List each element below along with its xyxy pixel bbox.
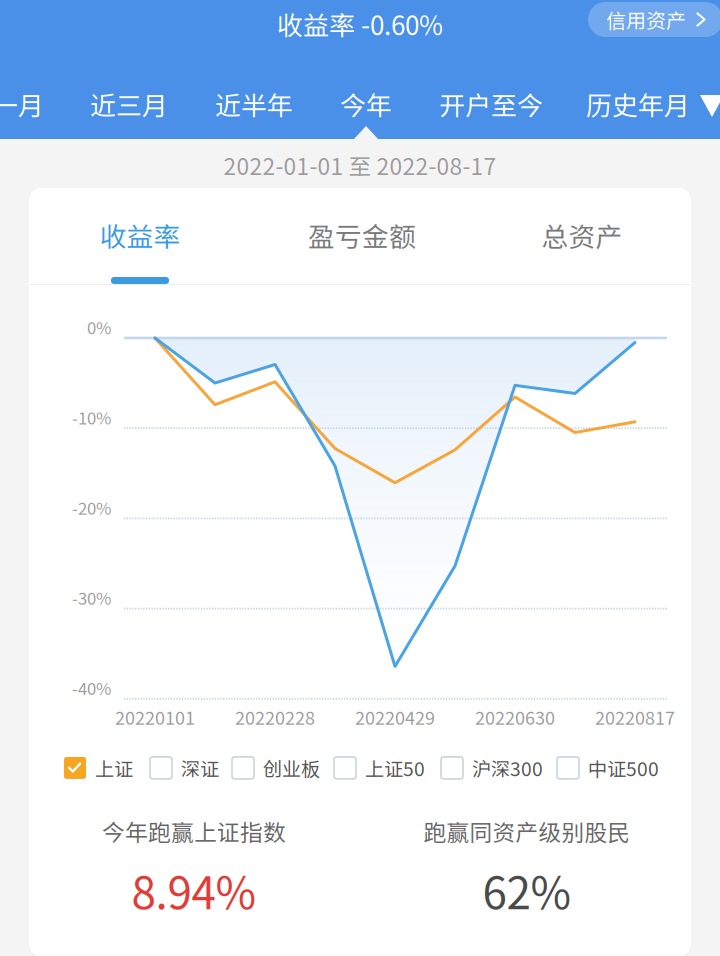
- staticText: -40%: [72, 676, 111, 700]
- staticText: 2022-01-01 至 2022-08-17: [223, 149, 496, 181]
- staticText: 今年: [340, 85, 392, 123]
- staticText: 开户至今: [439, 85, 543, 123]
- staticText: 信用资产: [606, 5, 686, 34]
- staticText: 深证: [181, 754, 219, 782]
- button[interactable]: 盈亏金额: [262, 188, 462, 284]
- staticText: 近半年: [215, 85, 293, 123]
- button[interactable]: 今年: [276, 84, 456, 124]
- staticText: -20%: [72, 495, 111, 519]
- button[interactable]: 信用资产: [588, 2, 720, 37]
- staticText: 0%: [87, 315, 111, 339]
- button[interactable]: 开户至今: [401, 84, 581, 124]
- staticText: 上证50: [365, 754, 425, 782]
- staticText: 收益率: [99, 216, 180, 254]
- staticText: 20220817: [595, 704, 675, 730]
- button[interactable]: 上证50: [334, 754, 425, 782]
- staticText: 62%: [482, 858, 571, 922]
- button[interactable]: 选择历史年月: [700, 95, 720, 117]
- button[interactable]: 近半年: [164, 84, 344, 124]
- staticText: 总资产: [541, 216, 622, 254]
- button[interactable]: 上证: [64, 754, 133, 782]
- staticText: 20220630: [475, 704, 555, 730]
- staticText: 沪深300: [472, 754, 543, 782]
- button[interactable]: 近一月: [0, 84, 95, 124]
- staticText: -10%: [72, 405, 111, 429]
- button[interactable]: 创业板: [232, 754, 320, 782]
- staticText: 20220228: [235, 704, 315, 730]
- staticText: 20220429: [355, 704, 435, 730]
- staticText: 创业板: [263, 754, 320, 782]
- staticText: 20220101: [115, 704, 195, 730]
- staticText: 历史年月: [586, 85, 690, 123]
- staticText: -30%: [72, 585, 111, 610]
- staticText: 盈亏金额: [308, 216, 416, 254]
- button[interactable]: 总资产: [482, 188, 682, 284]
- button[interactable]: 历史年月: [548, 84, 720, 124]
- button[interactable]: 近三月: [39, 84, 219, 124]
- staticText: 收益率 -0.60%: [277, 5, 443, 43]
- staticText: 8.94%: [131, 858, 256, 922]
- button[interactable]: 沪深300: [441, 754, 543, 782]
- staticText: 跑赢同资产级别股民: [423, 815, 630, 847]
- staticText: 今年跑赢上证指数: [102, 815, 286, 847]
- staticText: 近一月: [0, 85, 44, 123]
- staticText: 近三月: [90, 85, 168, 123]
- staticText: 上证: [95, 754, 133, 782]
- staticText: 中证500: [588, 754, 659, 782]
- button[interactable]: 深证: [150, 754, 219, 782]
- button[interactable]: 收益率: [40, 188, 240, 284]
- button[interactable]: 中证500: [557, 754, 659, 782]
